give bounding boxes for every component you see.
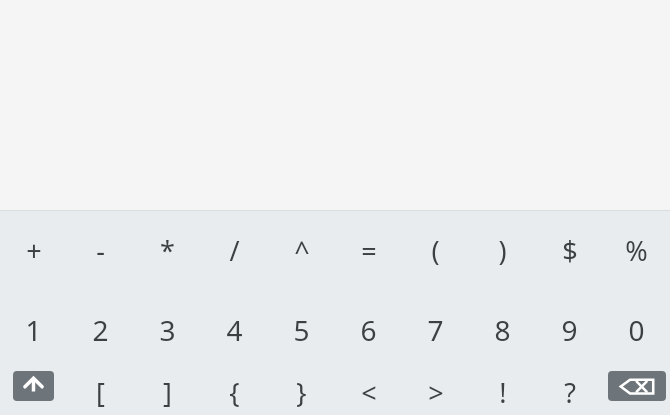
staticText: < [361,374,377,411]
staticText: 6 [360,311,377,349]
staticText: [ [96,374,105,411]
button[interactable]: $ [536,211,603,290]
button[interactable]: Backspace [608,371,666,401]
staticText: 8 [494,311,511,349]
staticText: 1 [25,311,42,349]
staticText: } [296,374,307,411]
button[interactable]: 8 [469,290,536,370]
button[interactable]: 7 [402,290,469,370]
staticText: $ [562,232,578,269]
button[interactable]: 2 [67,290,134,370]
button[interactable]: { [201,370,268,415]
staticText: 7 [427,311,444,349]
button[interactable]: ( [402,211,469,290]
staticText: { [229,374,240,411]
staticText: 0 [628,311,645,349]
button[interactable]: ) [469,211,536,290]
button[interactable]: ! [469,370,536,415]
button[interactable]: [ [67,370,134,415]
staticText: + [26,232,42,269]
button[interactable]: ] [134,370,201,415]
staticText: ? [564,374,576,411]
button[interactable]: / [201,211,268,290]
button[interactable]: 3 [134,290,201,370]
button[interactable]: < [335,370,402,415]
staticText: ( [431,232,440,269]
button[interactable]: } [268,370,335,415]
button[interactable]: 0 [603,290,670,370]
button[interactable]: ^ [268,211,335,290]
staticText: 2 [92,311,109,349]
staticText: - [96,232,105,269]
button[interactable]: ? [536,370,603,415]
staticText: ) [498,232,507,269]
staticText: 3 [159,311,176,349]
staticText: > [428,374,444,411]
staticText: / [229,232,240,269]
staticText: 9 [561,311,578,349]
button[interactable]: + [0,211,67,290]
staticText: ! [499,374,507,411]
button[interactable]: 1 [0,290,67,370]
button[interactable]: = [335,211,402,290]
button[interactable]: 6 [335,290,402,370]
staticText: % [625,232,648,269]
staticText: ] [163,374,172,411]
staticText: 5 [293,311,310,349]
button[interactable]: - [67,211,134,290]
button[interactable]: Shift [13,371,54,401]
staticText: = [361,232,377,269]
staticText: ^ [294,232,310,269]
button[interactable]: 4 [201,290,268,370]
button[interactable]: 9 [536,290,603,370]
button[interactable]: % [603,211,670,290]
staticText: * [160,232,175,269]
button[interactable]: * [134,211,201,290]
button[interactable]: > [402,370,469,415]
button[interactable]: 5 [268,290,335,370]
staticText: 4 [226,311,243,349]
